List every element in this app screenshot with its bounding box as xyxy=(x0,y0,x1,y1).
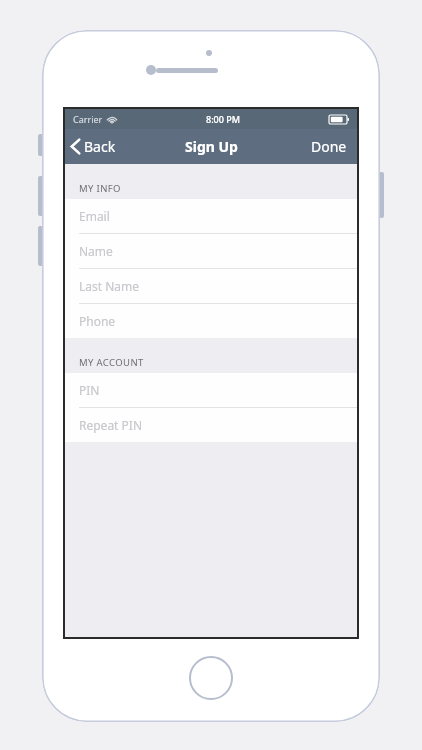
staticText: Email xyxy=(79,208,110,224)
staticText: Back xyxy=(84,137,116,156)
staticText: Name xyxy=(79,243,113,259)
staticText: Carrier xyxy=(73,113,103,125)
button[interactable]: Done xyxy=(301,129,357,164)
staticText: Repeat PIN xyxy=(79,417,143,433)
button[interactable]: Phone xyxy=(65,304,357,338)
button[interactable]: Email xyxy=(65,199,357,233)
staticText: MY ACCOUNT xyxy=(79,356,144,369)
staticText: 8:00 PM xyxy=(206,113,240,125)
button[interactable]: Last Name xyxy=(65,269,357,303)
staticText: MY INFO xyxy=(79,182,121,195)
staticText: Phone xyxy=(79,313,116,329)
staticText: Done xyxy=(311,137,347,156)
button[interactable]: Home xyxy=(189,656,233,700)
staticText: PIN xyxy=(79,382,100,398)
button[interactable]: Name xyxy=(65,234,357,268)
staticText: Sign Up xyxy=(185,137,238,156)
button[interactable]: Back xyxy=(65,129,126,164)
button[interactable]: Repeat PIN xyxy=(65,408,357,442)
staticText: Last Name xyxy=(79,278,140,294)
button[interactable]: PIN xyxy=(65,373,357,407)
